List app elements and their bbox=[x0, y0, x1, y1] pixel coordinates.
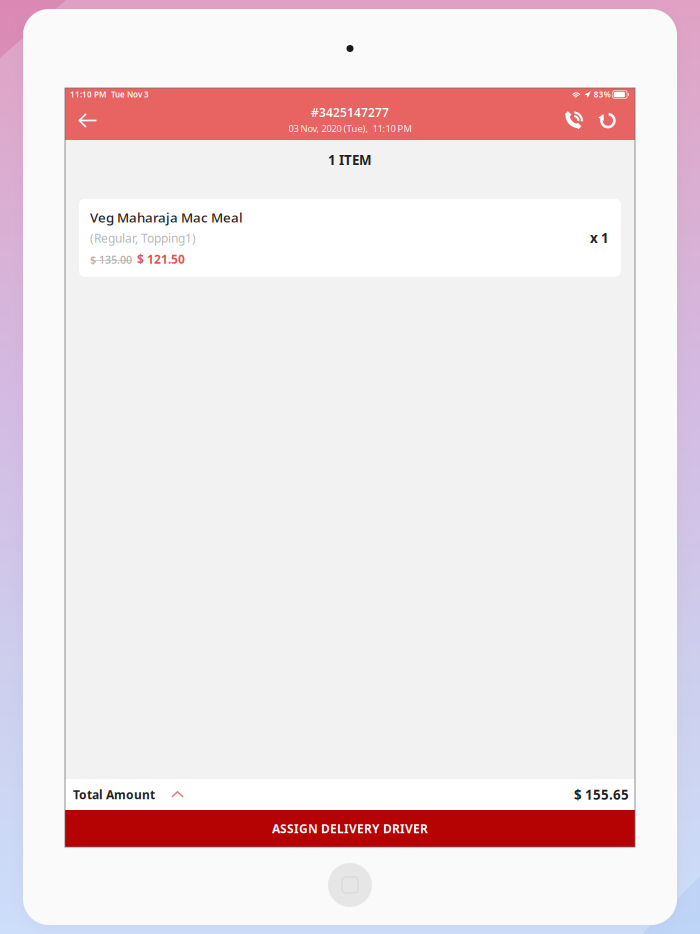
staticText: (Regular, Topping1) bbox=[90, 230, 196, 246]
staticText: Tue Nov 3 bbox=[111, 89, 149, 100]
button[interactable]: Call customer bbox=[558, 101, 591, 140]
staticText: #3425147277 bbox=[311, 104, 389, 120]
button[interactable]: Total Amount bbox=[65, 779, 635, 810]
staticText: 1 ITEM bbox=[328, 151, 372, 169]
staticText: $ 121.50 bbox=[137, 251, 185, 267]
staticText: $ 135.00 bbox=[90, 252, 132, 267]
button[interactable]: Order history bbox=[591, 101, 624, 140]
button[interactable]: ASSIGN DELIVERY DRIVER bbox=[65, 810, 635, 847]
staticText: Total Amount bbox=[73, 786, 155, 802]
staticText: ASSIGN DELIVERY DRIVER bbox=[272, 820, 428, 836]
staticText: 03 Nov, 2020 (Tue), 11:10 PM bbox=[288, 122, 411, 135]
staticText: $ 155.65 bbox=[574, 786, 629, 803]
staticText: 83% bbox=[594, 89, 611, 100]
staticText: Veg Maharaja Mac Meal bbox=[90, 208, 243, 226]
button[interactable]: Back bbox=[67, 101, 109, 140]
staticText: 11:10 PM bbox=[70, 89, 106, 100]
staticText: x 1 bbox=[590, 229, 609, 247]
